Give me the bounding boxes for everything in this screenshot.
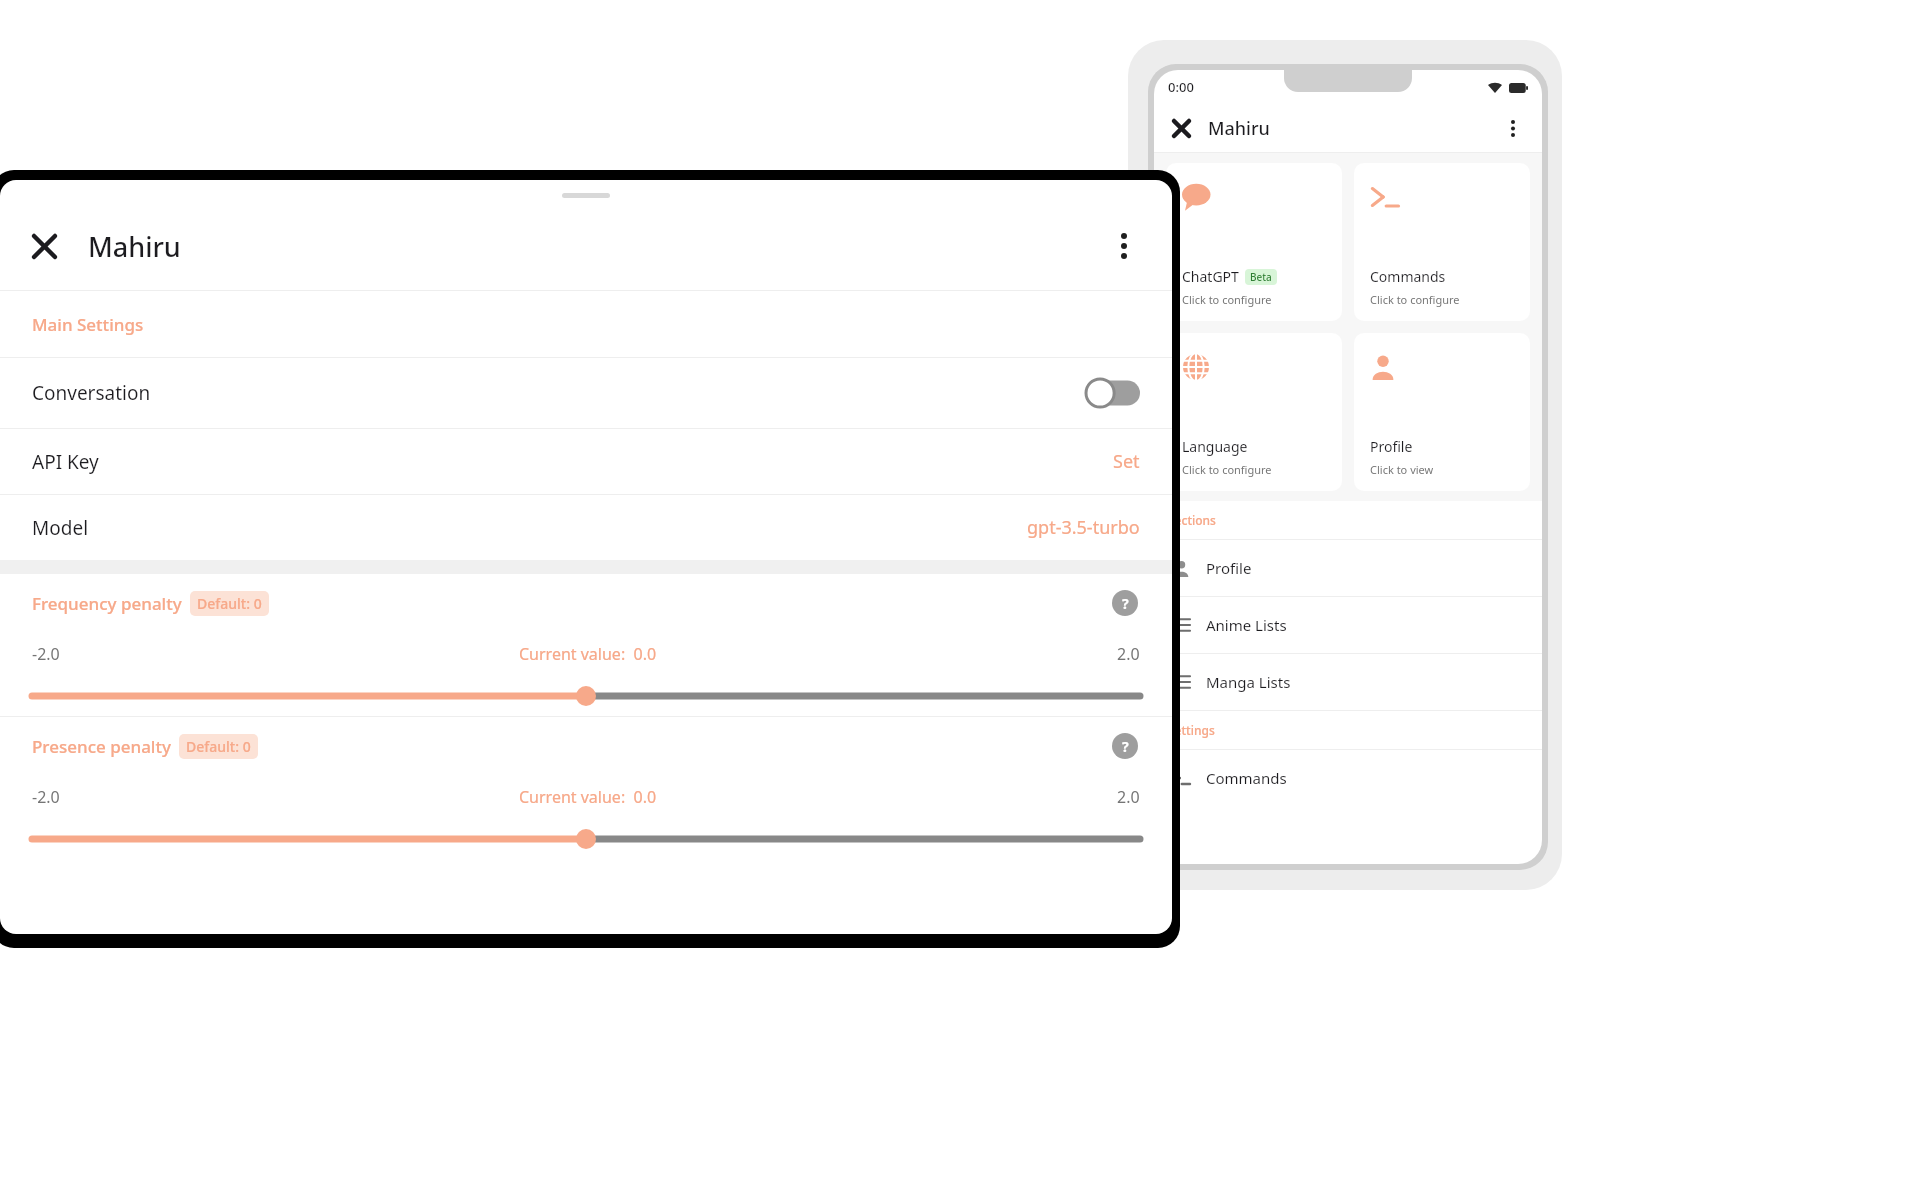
button[interactable] [0,676,1172,716]
button[interactable]: More options [1102,224,1146,268]
staticText: 2.0 [1117,786,1140,808]
staticText: Click to configure [1370,292,1460,307]
button[interactable]: ChatGPT [1166,163,1342,321]
staticText: Current value: 0.0 [519,643,657,665]
button[interactable]: Anime Lists [1154,597,1542,653]
staticText: Set [1113,449,1140,474]
button[interactable] [0,819,1172,859]
button[interactable]: Close [1166,113,1196,143]
button[interactable]: Profile [1154,540,1542,596]
staticText: Click to configure [1182,462,1272,477]
staticText: Commands [1370,267,1446,286]
staticText: Default: 0 [197,594,262,613]
staticText: Mahiru [1208,116,1270,141]
button[interactable]: Help [1110,731,1140,761]
staticText: Commands [1206,768,1287,788]
staticText: Profile [1370,437,1413,456]
button[interactable]: Commands [1154,750,1542,806]
button[interactable]: Close [22,224,66,268]
staticText: Settings [1168,722,1215,738]
staticText: Sections [1168,512,1216,528]
staticText: Model [32,515,89,541]
staticText: Main Settings [32,313,144,336]
staticText: Presence penalty [32,735,171,758]
staticText: ChatGPT [1182,267,1239,286]
staticText: Manga Lists [1206,672,1291,692]
button[interactable]: Model [0,495,1172,560]
button[interactable]: Profile [1354,333,1530,491]
staticText: Beta [1250,270,1272,284]
staticText: Language [1182,437,1248,456]
staticText: 2.0 [1117,643,1140,665]
staticText: -2.0 [32,643,60,665]
staticText: Default: 0 [186,737,251,756]
staticText: Click to view [1370,462,1434,477]
staticText: ? [1122,737,1129,756]
staticText: Mahiru [88,228,181,265]
button[interactable]: More options [1498,113,1528,143]
staticText: -2.0 [32,786,60,808]
staticText: Click to configure [1182,292,1272,307]
staticText: ? [1122,594,1129,613]
staticText: Profile [1206,558,1252,578]
button[interactable]: Conversation [0,358,1172,428]
button[interactable]: Commands [1354,163,1530,321]
staticText: API Key [32,449,99,475]
button[interactable]: Language [1166,333,1342,491]
staticText: Anime Lists [1206,615,1287,635]
staticText: 0:00 [1168,78,1194,96]
staticText: Current value: 0.0 [519,786,657,808]
staticText: Conversation [32,380,151,406]
button[interactable]: API Key [0,429,1172,494]
button[interactable]: Help [1110,588,1140,618]
button[interactable]: Manga Lists [1154,654,1542,710]
staticText: Frequency penalty [32,592,182,615]
staticText: gpt-3.5-turbo [1027,515,1140,540]
